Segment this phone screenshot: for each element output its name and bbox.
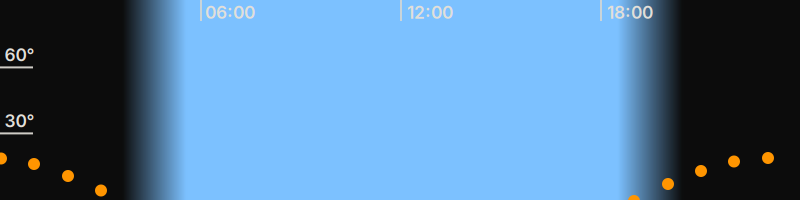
staticText: 30° [4,110,34,131]
staticText: 06:00 [205,2,255,23]
staticText: 12:00 [407,2,453,23]
staticText: 60° [4,44,34,65]
staticText: 18:00 [607,2,653,23]
